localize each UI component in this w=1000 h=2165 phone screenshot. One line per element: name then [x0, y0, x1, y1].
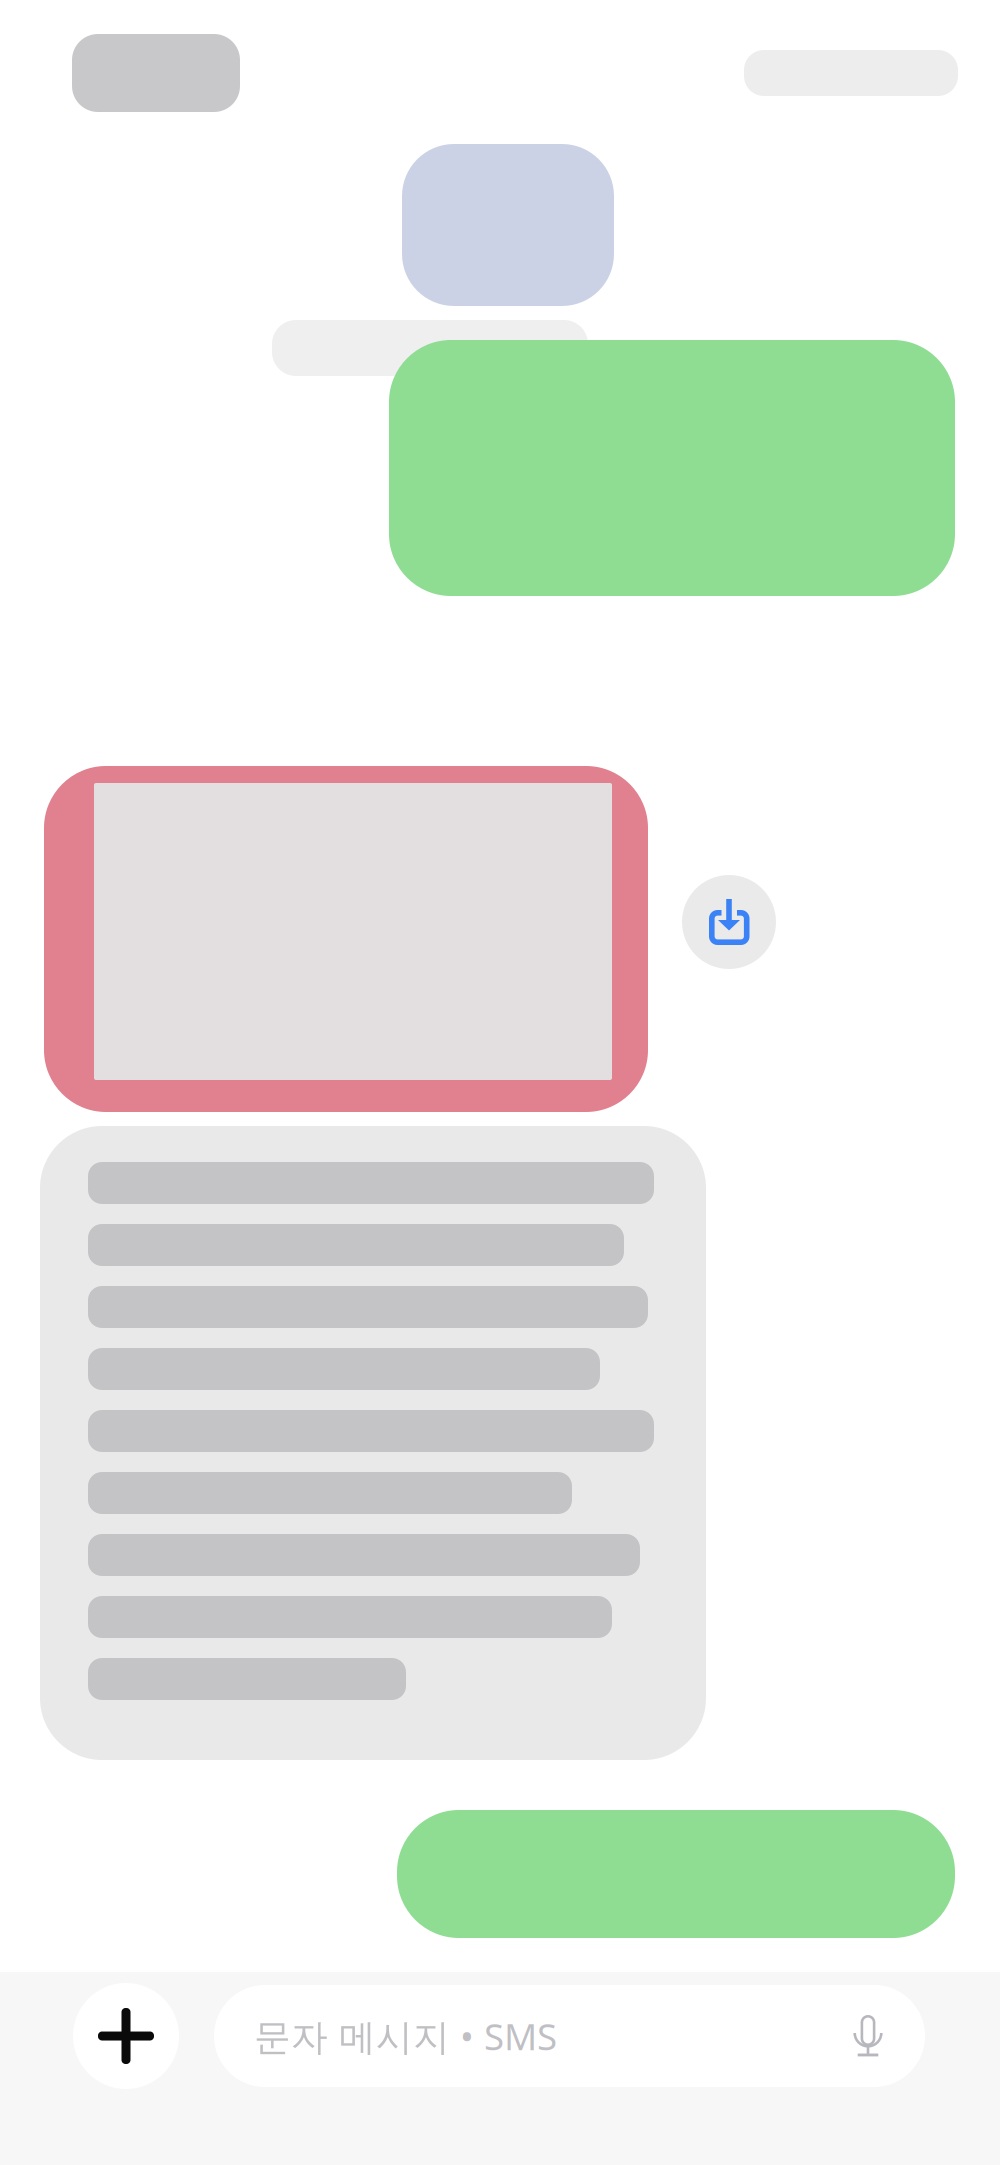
button[interactable]: Save to Photos	[682, 875, 776, 969]
button[interactable]: Add attachment	[73, 1983, 179, 2089]
staticText: 문자 메시지 • SMS	[254, 2011, 557, 2061]
button[interactable]: Photo attachment	[44, 766, 648, 1112]
button[interactable]: Sent message	[389, 340, 955, 596]
button[interactable]: Sent message	[397, 1810, 955, 1938]
button[interactable]: 문자 메시지 • SMS	[214, 1985, 925, 2087]
button[interactable]: Received message	[40, 1126, 706, 1760]
